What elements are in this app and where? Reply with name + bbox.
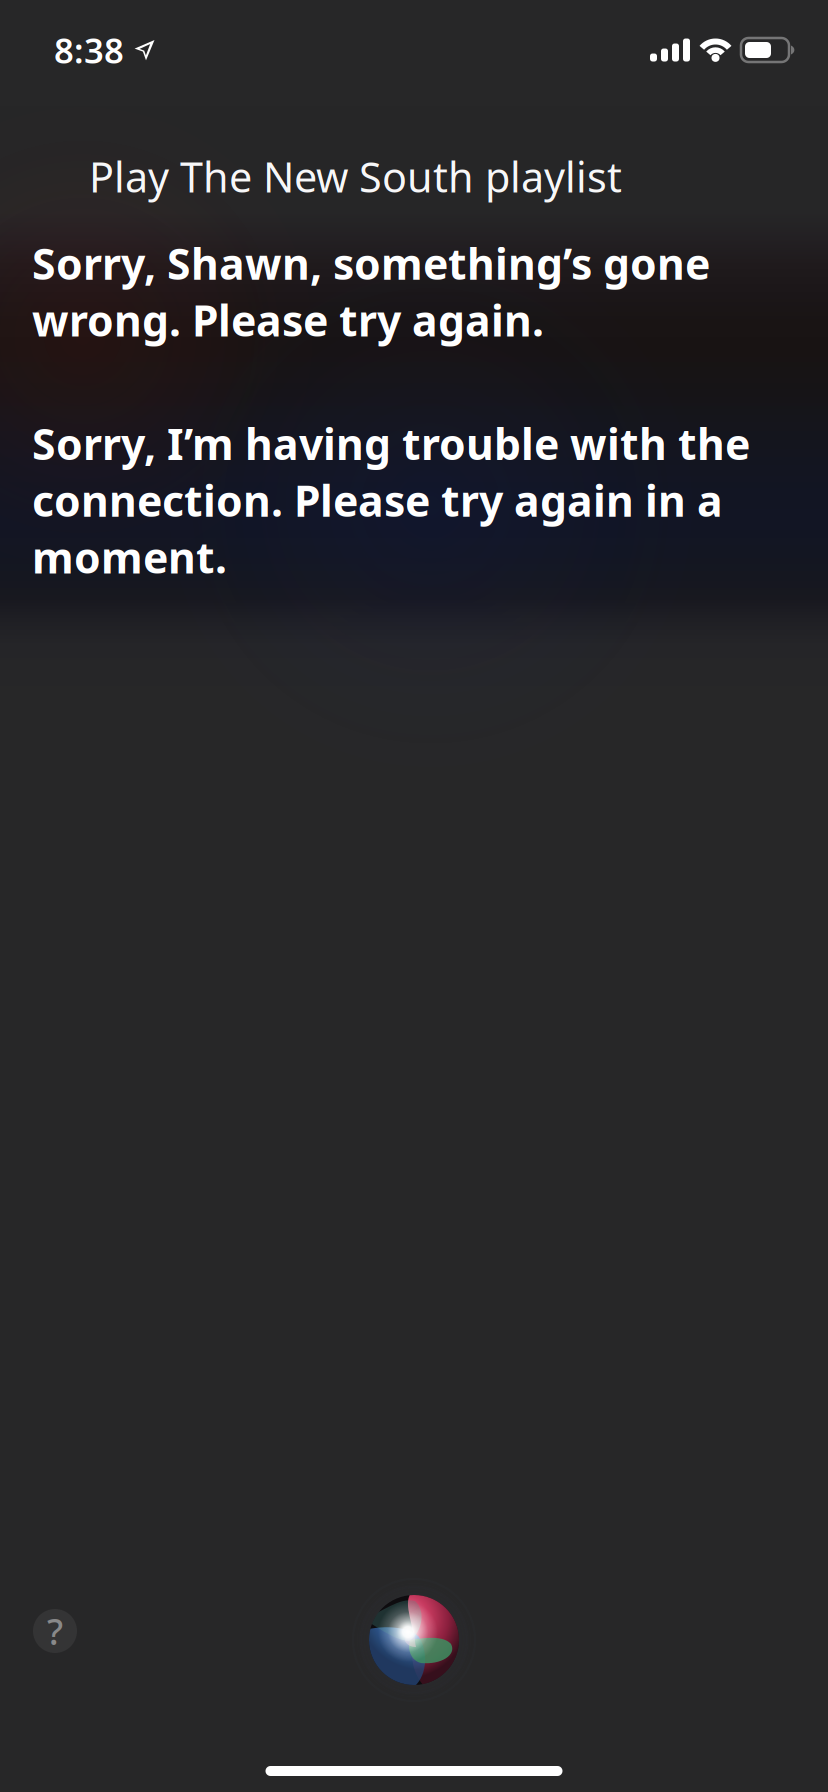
staticText: Sorry, Shawn, something’s gone wrong. Pl… [32,235,710,348]
button[interactable]: Siri help [33,1609,77,1653]
staticText: ? [47,1607,63,1655]
button[interactable]: Siri [348,1574,480,1706]
staticText: 8:38 [54,27,124,73]
staticText: Sorry, I’m having trouble with the conne… [32,415,750,585]
staticText: Play The New South playlist [89,149,622,204]
